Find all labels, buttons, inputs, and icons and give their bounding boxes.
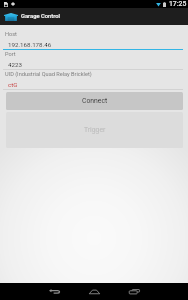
staticText: Port <box>5 51 188 58</box>
button[interactable] <box>0 49 188 70</box>
button[interactable] <box>0 69 188 90</box>
staticText: ctG <box>8 81 188 88</box>
button[interactable]: Back <box>45 283 64 300</box>
staticText: Host <box>5 31 188 38</box>
staticText: 17:25 <box>169 0 187 8</box>
staticText: Garage Control <box>21 13 60 20</box>
staticText: Trigger <box>84 126 106 134</box>
staticText: 192.168.178.46 <box>8 41 188 48</box>
button[interactable]: Home <box>85 283 104 300</box>
button[interactable]: Connect <box>6 92 183 110</box>
button[interactable]: Recent apps <box>125 283 144 300</box>
button[interactable] <box>0 29 188 50</box>
button[interactable]: Garage Control <box>0 8 188 25</box>
staticText: Connect <box>82 97 108 105</box>
staticText: UID (Industrial Quad Relay Bricklet) <box>5 71 188 78</box>
staticText: 4223 <box>8 61 188 68</box>
